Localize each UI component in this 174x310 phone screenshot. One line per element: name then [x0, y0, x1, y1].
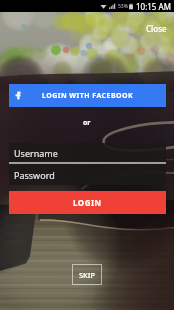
button[interactable]: LOGIN WITH FACEBOOK — [9, 84, 166, 107]
button[interactable]: LOGIN — [9, 191, 166, 214]
button[interactable]: Username — [9, 143, 166, 162]
button[interactable]: Password — [9, 164, 166, 185]
button[interactable]: SKIP — [72, 264, 102, 285]
staticText: SKIP — [79, 270, 96, 280]
staticText: Password — [14, 169, 55, 181]
staticText: Close — [146, 23, 167, 34]
button[interactable]: Close — [141, 20, 172, 37]
staticText: 10:15 AM — [136, 1, 171, 12]
staticText: LOGIN WITH FACEBOOK — [42, 91, 134, 101]
staticText: Username — [14, 147, 58, 159]
staticText: or — [83, 118, 91, 128]
staticText: LOGIN — [73, 197, 102, 208]
staticText: 53% — [118, 3, 128, 10]
